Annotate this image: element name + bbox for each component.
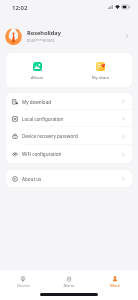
button[interactable]: Device recovery password bbox=[6, 127, 132, 145]
button[interactable]: WiFi configuration bbox=[6, 145, 132, 163]
button[interactable]: About us bbox=[6, 170, 132, 187]
staticText: Device bbox=[17, 283, 30, 288]
staticText: Album bbox=[31, 75, 44, 80]
staticText: Roseholiday bbox=[27, 29, 61, 37]
staticText: My download bbox=[22, 99, 121, 105]
staticText: Alarm bbox=[63, 283, 75, 288]
button[interactable]: Device bbox=[0, 270, 46, 292]
button[interactable]: Album bbox=[6, 53, 69, 87]
staticText: Mine bbox=[110, 283, 120, 288]
button[interactable]: My download bbox=[6, 93, 132, 110]
staticText: ID:35****873615 bbox=[27, 38, 55, 43]
staticText: About us bbox=[22, 176, 121, 182]
button[interactable]: Local configuration bbox=[6, 110, 132, 127]
button[interactable]: My share bbox=[69, 53, 132, 87]
staticText: My share bbox=[92, 75, 110, 80]
button[interactable]: Alarm bbox=[46, 270, 92, 292]
staticText: Local configuration bbox=[22, 116, 121, 122]
staticText: 12:02 bbox=[12, 4, 28, 12]
button[interactable]: Mine bbox=[92, 270, 138, 292]
button[interactable]: Roseholiday bbox=[0, 22, 138, 50]
staticText: WiFi configuration bbox=[22, 151, 121, 157]
staticText: Device recovery password bbox=[22, 133, 121, 139]
